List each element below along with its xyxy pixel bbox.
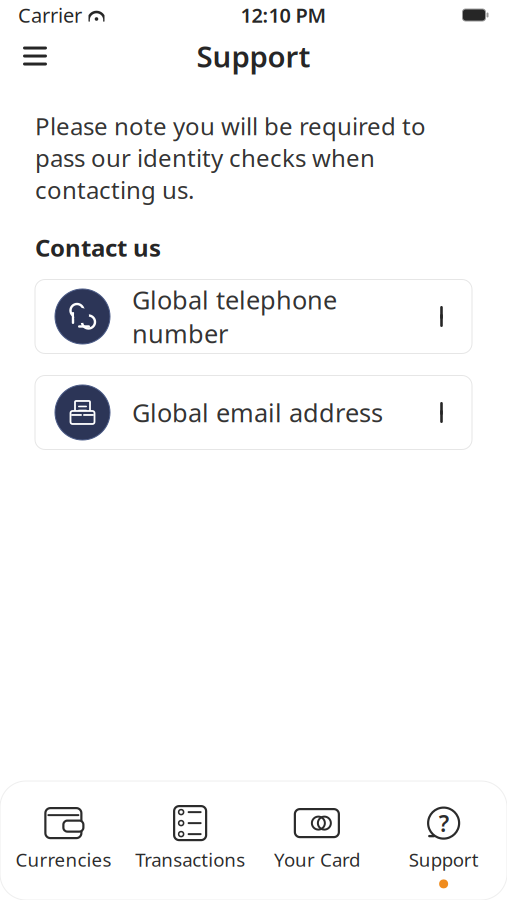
staticText: Global telephone number <box>132 283 337 350</box>
button[interactable]: Currencies <box>0 791 127 890</box>
button[interactable]: Your Card <box>253 791 380 890</box>
staticText: Please note you will be required to pass… <box>35 110 426 206</box>
staticText: Global email address <box>132 396 383 429</box>
button[interactable]: Global telephone number <box>35 279 472 353</box>
staticText: ? <box>439 808 449 838</box>
button[interactable]: Global email address <box>35 375 472 449</box>
staticText: Support <box>409 847 479 872</box>
button[interactable]: ? <box>380 791 507 890</box>
button[interactable]: Menu <box>11 34 59 78</box>
button[interactable]: Transactions <box>127 791 254 890</box>
staticText: Your Card <box>274 847 360 872</box>
staticText: Currencies <box>15 847 111 872</box>
staticText: Carrier <box>18 2 82 28</box>
staticText: 12:10 PM <box>240 2 326 28</box>
staticText: Support <box>196 36 310 75</box>
staticText: Transactions <box>135 847 245 872</box>
staticText: Contact us <box>35 232 161 263</box>
